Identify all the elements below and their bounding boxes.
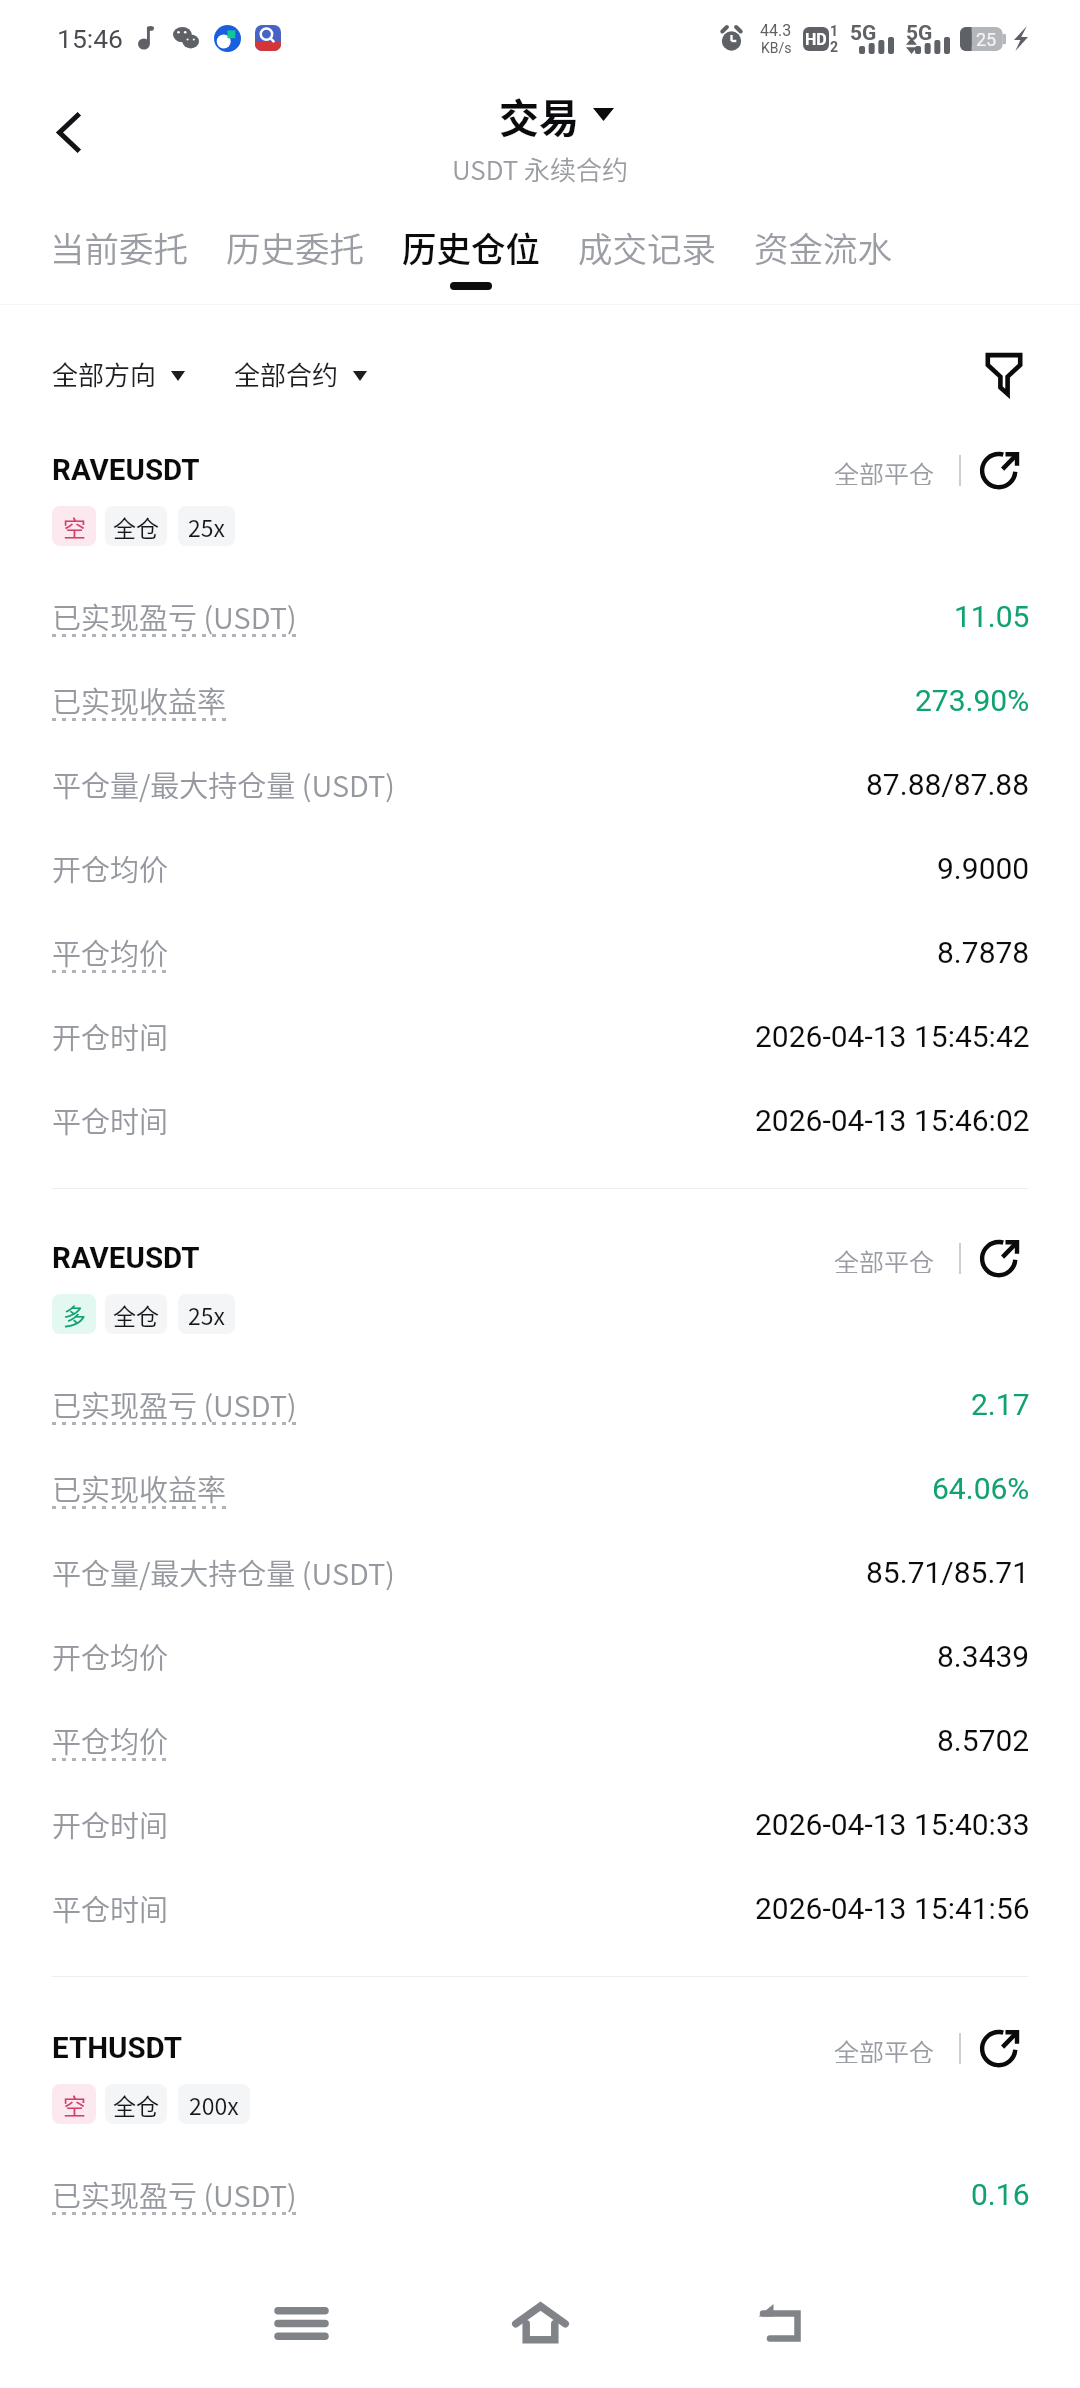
staticText: 空 (63, 510, 86, 543)
staticText: 64.06% (932, 1471, 1030, 1506)
button[interactable]: Share position (970, 2025, 1030, 2071)
staticText: 开仓时间 (52, 1803, 169, 1845)
staticText: 85.71/85.71 (866, 1555, 1030, 1590)
staticText: 2.17 (971, 1387, 1030, 1422)
staticText: 全部合约 (234, 355, 339, 393)
staticText: 全部平仓 (834, 1243, 935, 1273)
staticText: 平仓均价 (52, 1719, 169, 1761)
button[interactable]: 全部方向 (52, 355, 185, 393)
staticText: 8.3439 (937, 1639, 1030, 1674)
staticText: 5G (906, 21, 933, 46)
button[interactable]: 成交记录 (578, 200, 716, 304)
staticText: 已实现盈亏 (USDT) (52, 2173, 297, 2215)
staticText: HD (805, 30, 827, 49)
button[interactable]: Back (23, 87, 113, 177)
staticText: 25 (976, 29, 997, 50)
button[interactable]: 全部平仓 (828, 447, 941, 493)
staticText: 2026-04-13 15:41:56 (755, 1891, 1030, 1926)
staticText: 开仓时间 (52, 1015, 169, 1057)
staticText: 已实现收益率 (52, 1467, 227, 1509)
staticText: 交易 (499, 87, 579, 145)
staticText: 25x (188, 1298, 225, 1331)
button[interactable]: 全部平仓 (828, 1235, 941, 1281)
staticText: 全仓 (113, 1298, 159, 1331)
button[interactable]: 全部平仓 (828, 2025, 941, 2071)
staticText: 开仓均价 (52, 847, 169, 889)
staticText: KB/s (761, 40, 792, 56)
button[interactable]: Back (734, 2278, 824, 2368)
button[interactable]: 交易 (499, 87, 614, 145)
staticText: 1 (830, 23, 839, 39)
staticText: 44.3 (760, 21, 792, 40)
staticText: 资金流水 (754, 222, 892, 272)
button[interactable]: Home (495, 2278, 585, 2368)
staticText: 全部方向 (52, 355, 157, 393)
staticText: 平仓时间 (52, 1099, 169, 1141)
staticText: 历史仓位 (402, 222, 540, 272)
staticText: USDT 永续合约 (452, 150, 629, 188)
staticText: 0.16 (971, 2177, 1030, 2212)
button[interactable]: 全部合约 (234, 355, 367, 393)
button[interactable]: Filter (962, 332, 1046, 416)
staticText: 2026-04-13 15:45:42 (755, 1019, 1030, 1054)
button[interactable]: 资金流水 (754, 200, 892, 304)
button[interactable]: Share position (970, 1235, 1030, 1281)
staticText: 多 (63, 1298, 86, 1331)
staticText: 25x (188, 510, 225, 543)
staticText: 5G (850, 21, 877, 46)
staticText: RAVEUSDT (52, 453, 200, 488)
button[interactable]: 历史委托 (226, 200, 364, 304)
button[interactable]: Share position (970, 447, 1030, 493)
staticText: 平仓量/最大持仓量 (USDT) (52, 1551, 395, 1593)
staticText: 已实现收益率 (52, 679, 227, 721)
staticText: 15:46 (57, 23, 123, 54)
staticText: 已实现盈亏 (USDT) (52, 1383, 297, 1425)
staticText: 2026-04-13 15:46:02 (755, 1103, 1030, 1138)
staticText: 平仓时间 (52, 1887, 169, 1929)
button[interactable]: Recent apps (256, 2278, 346, 2368)
staticText: 当前委托 (50, 222, 188, 272)
staticText: 已实现盈亏 (USDT) (52, 595, 297, 637)
staticText: 开仓均价 (52, 1635, 169, 1677)
staticText: 8.5702 (937, 1723, 1030, 1758)
staticText: 全仓 (113, 2088, 159, 2121)
staticText: 平仓均价 (52, 931, 169, 973)
staticText: 全部平仓 (834, 455, 935, 485)
staticText: 11.05 (954, 599, 1030, 634)
staticText: 2026-04-13 15:40:33 (755, 1807, 1030, 1842)
staticText: 87.88/87.88 (866, 767, 1030, 802)
staticText: 273.90% (915, 683, 1030, 718)
button[interactable]: 当前委托 (50, 200, 188, 304)
staticText: RAVEUSDT (52, 1241, 200, 1276)
staticText: 9.9000 (937, 851, 1030, 886)
staticText: 平仓量/最大持仓量 (USDT) (52, 763, 395, 805)
staticText: ETHUSDT (52, 2031, 183, 2066)
button[interactable]: 历史仓位 (402, 200, 540, 304)
staticText: 2 (830, 39, 839, 55)
staticText: 空 (63, 2088, 86, 2121)
staticText: 成交记录 (578, 222, 716, 272)
staticText: 200x (189, 2088, 239, 2121)
staticText: 历史委托 (226, 222, 364, 272)
staticText: 全部平仓 (834, 2033, 935, 2063)
staticText: 全仓 (113, 510, 159, 543)
staticText: 8.7878 (937, 935, 1030, 970)
